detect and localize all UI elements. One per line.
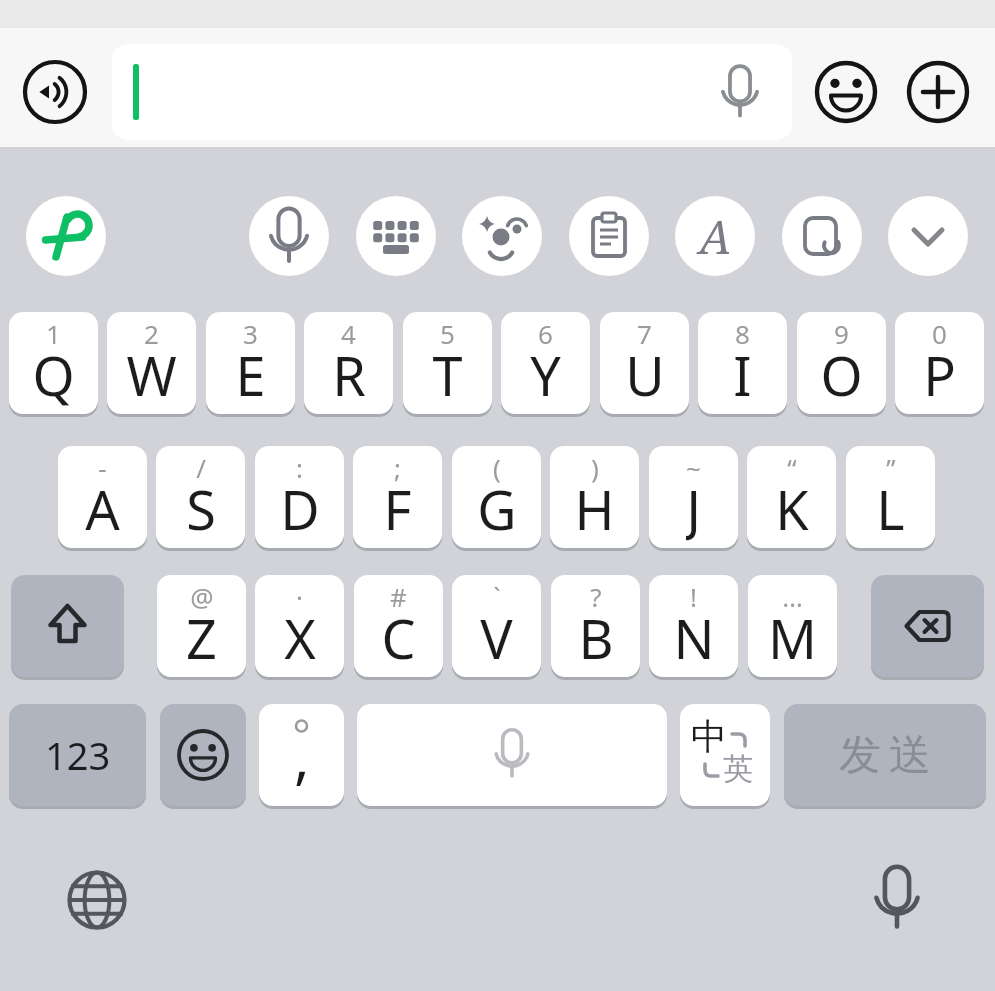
staticText: E <box>235 338 266 410</box>
button[interactable] <box>206 312 295 417</box>
staticText: F <box>383 472 412 544</box>
button[interactable]: 发送 <box>784 704 986 809</box>
button[interactable] <box>255 575 344 680</box>
staticText: - <box>98 450 107 485</box>
button[interactable] <box>112 44 792 140</box>
button[interactable] <box>23 60 87 124</box>
staticText: , <box>294 716 310 795</box>
staticText: Z <box>186 601 217 673</box>
staticText: 发送 <box>835 729 935 782</box>
staticText: 4 <box>341 316 356 351</box>
button[interactable] <box>551 575 640 680</box>
staticText: ` <box>493 579 501 614</box>
staticText: S <box>186 472 216 544</box>
staticText: ~ <box>686 450 701 485</box>
button[interactable] <box>452 446 541 551</box>
button[interactable] <box>871 575 984 680</box>
button[interactable] <box>649 575 738 680</box>
staticText: A <box>85 472 120 544</box>
button[interactable] <box>569 196 649 276</box>
button[interactable] <box>846 446 935 551</box>
staticText: 英 <box>723 750 753 788</box>
staticText: X <box>284 601 316 673</box>
staticText: K <box>775 472 809 544</box>
button[interactable] <box>906 60 970 124</box>
staticText: 7 <box>637 316 652 351</box>
staticText: W <box>126 338 177 410</box>
button[interactable] <box>9 312 98 417</box>
staticText: I <box>733 338 752 410</box>
button[interactable] <box>356 196 436 276</box>
staticText: Q <box>32 338 75 410</box>
staticText: Y <box>530 338 561 410</box>
staticText: M <box>768 601 817 673</box>
button[interactable] <box>814 60 878 124</box>
button[interactable] <box>501 312 590 417</box>
button[interactable] <box>782 196 862 276</box>
button[interactable] <box>452 575 541 680</box>
button[interactable] <box>304 312 393 417</box>
button[interactable] <box>156 446 245 551</box>
button[interactable] <box>797 312 886 417</box>
button[interactable] <box>58 446 147 551</box>
staticText: 5 <box>440 316 455 351</box>
staticText: H <box>574 472 615 544</box>
button[interactable]: 123 <box>9 704 146 809</box>
button[interactable] <box>550 446 639 551</box>
staticText: N <box>673 601 715 673</box>
button[interactable] <box>160 704 246 809</box>
button[interactable] <box>249 196 329 276</box>
button[interactable] <box>62 865 132 935</box>
staticText: T <box>432 338 463 410</box>
button[interactable]: 中 <box>680 704 770 809</box>
staticText: ! <box>690 579 697 614</box>
staticText: 9 <box>834 316 849 351</box>
staticText: 6 <box>538 316 553 351</box>
staticText: @ <box>190 579 214 614</box>
staticText: ( <box>493 450 501 485</box>
button[interactable] <box>747 446 836 551</box>
staticText: O <box>820 338 863 410</box>
staticText: B <box>578 601 614 673</box>
button[interactable] <box>888 196 968 276</box>
staticText: A <box>699 205 732 268</box>
button[interactable] <box>26 196 106 276</box>
staticText: 中 <box>691 714 727 759</box>
staticText: # <box>390 579 407 614</box>
button[interactable] <box>255 446 344 551</box>
staticText: ? <box>590 579 602 614</box>
button[interactable] <box>357 704 667 809</box>
staticText: 3 <box>243 316 258 351</box>
staticText: … <box>782 579 803 614</box>
staticText: ) <box>591 450 599 485</box>
button[interactable] <box>403 312 492 417</box>
button[interactable]: A <box>675 196 755 276</box>
button[interactable] <box>11 575 124 680</box>
staticText: 1 <box>46 316 61 351</box>
staticText: U <box>625 338 665 410</box>
button[interactable] <box>862 863 932 933</box>
button[interactable] <box>895 312 984 417</box>
button[interactable] <box>107 312 196 417</box>
button[interactable] <box>157 575 246 680</box>
staticText: / <box>196 450 206 485</box>
staticText: 0 <box>932 316 947 351</box>
staticText: · <box>296 579 303 614</box>
staticText: J <box>686 472 701 544</box>
staticText: C <box>381 601 416 673</box>
button[interactable] <box>698 312 787 417</box>
button[interactable] <box>353 446 442 551</box>
button[interactable] <box>600 312 689 417</box>
staticText: G <box>477 472 517 544</box>
staticText: 8 <box>735 316 750 351</box>
button[interactable]: , <box>259 704 344 809</box>
staticText: P <box>923 338 956 410</box>
staticText: R <box>332 338 366 410</box>
staticText: 123 <box>45 729 111 781</box>
button[interactable] <box>462 196 542 276</box>
staticText: ; <box>394 450 401 485</box>
button[interactable] <box>748 575 837 680</box>
button[interactable] <box>354 575 443 680</box>
staticText: 2 <box>144 316 159 351</box>
button[interactable] <box>649 446 738 551</box>
